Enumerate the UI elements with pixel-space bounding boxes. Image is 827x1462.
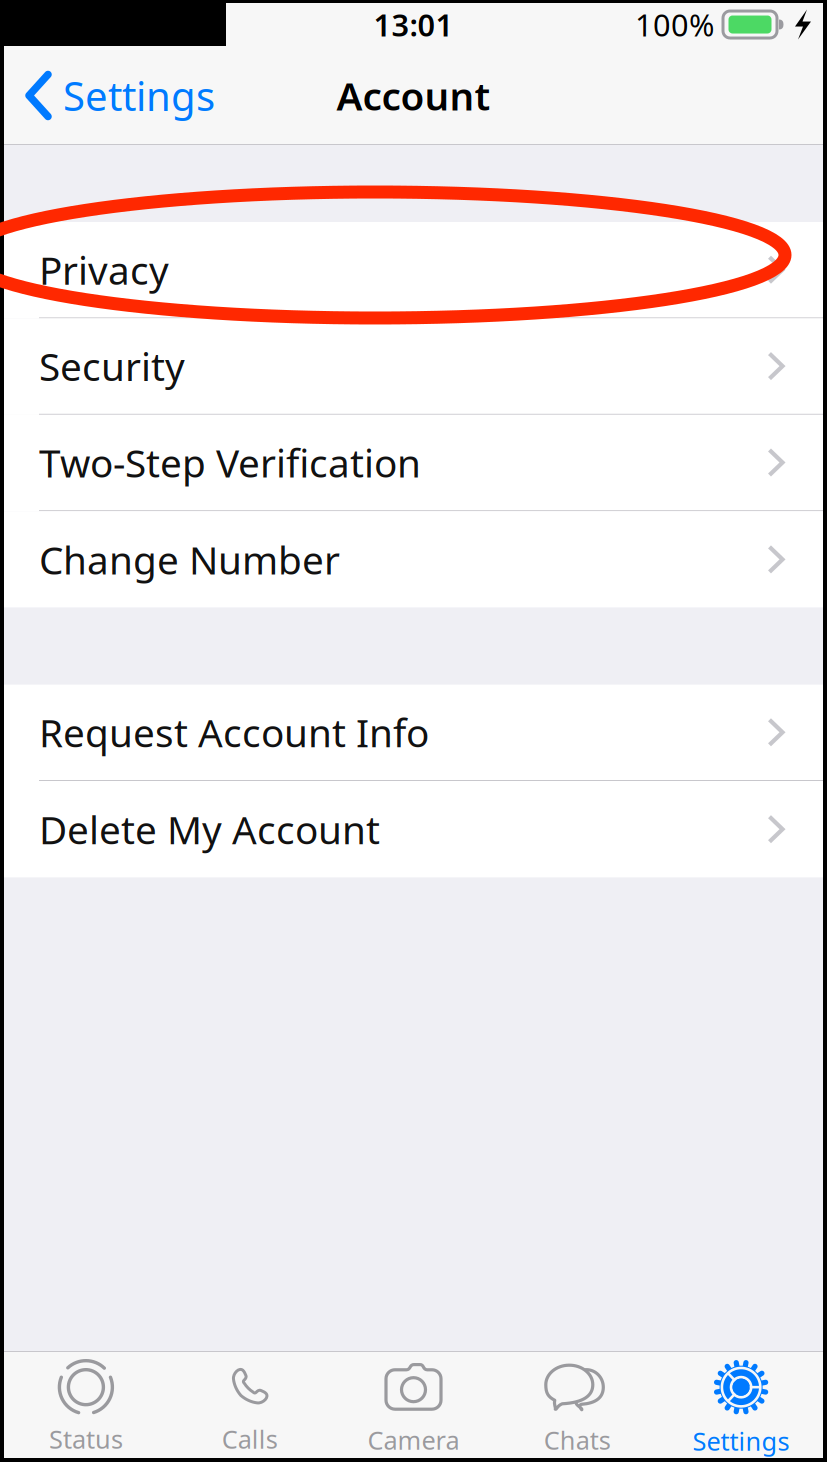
staticText: Settings [63, 69, 215, 122]
button[interactable]: Security [4, 318, 823, 415]
staticText: Settings [693, 1424, 790, 1458]
button[interactable]: Chats [495, 1351, 659, 1458]
button[interactable]: Change Number [4, 511, 823, 608]
staticText: 100% [635, 4, 714, 45]
button[interactable]: Delete My Account [4, 781, 823, 877]
button[interactable]: Settings [4, 46, 227, 145]
staticText: Chats [544, 1423, 611, 1457]
button[interactable]: Status [4, 1351, 168, 1458]
staticText: Calls [222, 1422, 278, 1456]
button[interactable]: Request Account Info [4, 685, 823, 781]
staticText: Change Number [39, 534, 340, 585]
button[interactable]: Calls [168, 1351, 332, 1458]
button[interactable]: Settings [659, 1351, 823, 1458]
button[interactable]: Privacy [4, 222, 823, 318]
staticText: 13:01 [373, 4, 453, 45]
staticText: Camera [367, 1423, 459, 1457]
staticText: Request Account Info [39, 707, 429, 758]
staticText: Status [49, 1422, 123, 1456]
staticText: Privacy [39, 244, 169, 295]
staticText: Delete My Account [39, 803, 380, 855]
button[interactable]: Camera [332, 1351, 495, 1458]
button[interactable]: Two-Step Verification [4, 415, 823, 511]
staticText: Security [39, 340, 185, 392]
staticText: Account [336, 70, 490, 121]
staticText: Two-Step Verification [39, 437, 421, 488]
